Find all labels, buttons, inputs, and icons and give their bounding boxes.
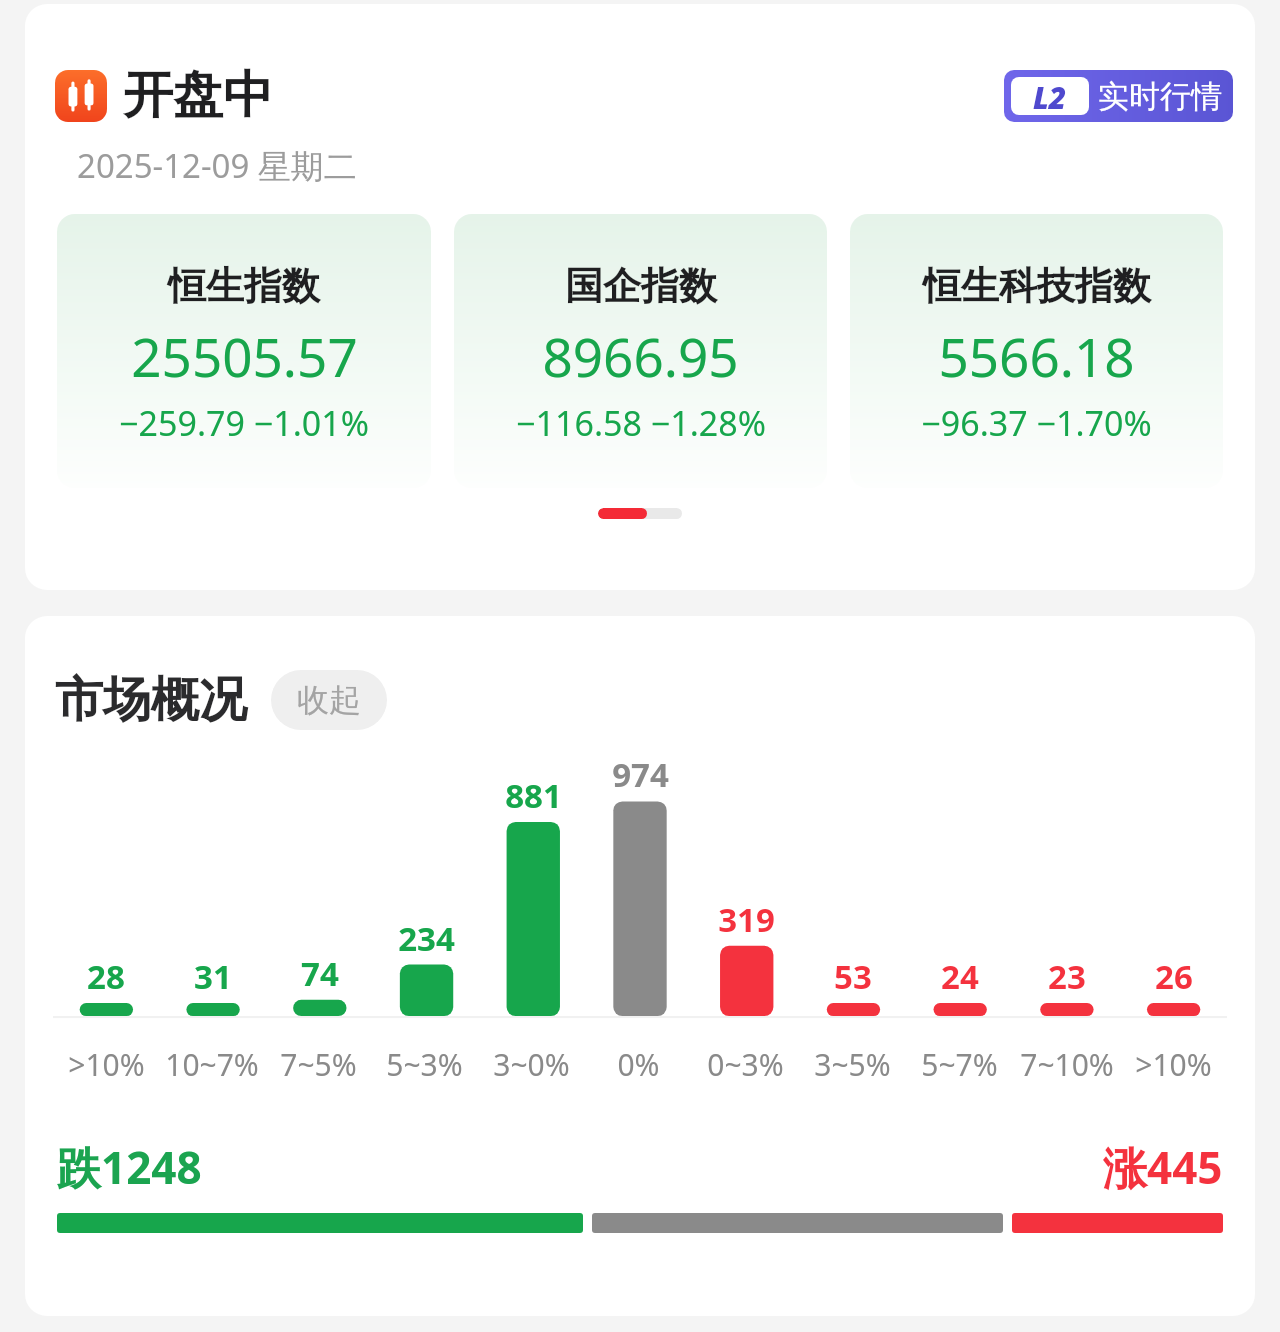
staticText: 881 bbox=[505, 773, 562, 818]
staticText: 恒生指数 bbox=[168, 262, 320, 310]
other: Market open status bbox=[55, 70, 107, 122]
staticText: 收起 bbox=[297, 680, 361, 720]
staticText: −259.79 −1.01% bbox=[119, 400, 369, 446]
staticText: L2 bbox=[1033, 77, 1067, 115]
staticText: 3~5% bbox=[814, 1044, 891, 1085]
button[interactable]: L2 bbox=[1004, 70, 1233, 122]
staticText: 5566.18 bbox=[938, 320, 1135, 392]
staticText: 7~10% bbox=[1020, 1044, 1114, 1085]
staticText: >10% bbox=[68, 1044, 145, 1085]
staticText: 74 bbox=[301, 951, 339, 996]
staticText: 25505.57 bbox=[131, 320, 358, 392]
staticText: 234 bbox=[398, 916, 455, 961]
staticText: 53 bbox=[834, 954, 872, 999]
staticText: 10~7% bbox=[165, 1044, 259, 1085]
staticText: 24 bbox=[941, 954, 979, 999]
staticText: 跌1248 bbox=[57, 1137, 202, 1197]
button[interactable]: 恒生科技指数 bbox=[850, 214, 1223, 488]
staticText: 市场概况 bbox=[55, 670, 247, 730]
staticText: 恒生科技指数 bbox=[923, 262, 1151, 310]
staticText: 涨445 bbox=[1103, 1137, 1223, 1197]
staticText: 2025-12-09 星期二 bbox=[77, 143, 357, 188]
staticText: 国企指数 bbox=[565, 262, 717, 310]
staticText: 开盘中 bbox=[123, 64, 273, 127]
staticText: 0% bbox=[617, 1044, 660, 1085]
staticText: 7~5% bbox=[280, 1044, 357, 1085]
staticText: −116.58 −1.28% bbox=[516, 400, 766, 446]
button[interactable]: 国企指数 bbox=[454, 214, 827, 488]
staticText: 319 bbox=[718, 897, 775, 942]
staticText: >10% bbox=[1135, 1044, 1212, 1085]
staticText: 8966.95 bbox=[542, 320, 739, 392]
button[interactable]: 恒生指数 bbox=[57, 214, 431, 488]
staticText: 31 bbox=[194, 954, 232, 999]
staticText: 3~0% bbox=[493, 1044, 570, 1085]
staticText: 5~3% bbox=[386, 1044, 463, 1085]
staticText: 28 bbox=[87, 954, 125, 999]
staticText: 实时行情 bbox=[1098, 77, 1222, 116]
button[interactable]: 收起 bbox=[271, 670, 387, 730]
staticText: 5~7% bbox=[921, 1044, 998, 1085]
staticText: 974 bbox=[612, 752, 669, 797]
staticText: 0~3% bbox=[707, 1044, 784, 1085]
staticText: −96.37 −1.70% bbox=[921, 400, 1152, 446]
staticText: 26 bbox=[1155, 954, 1193, 999]
staticText: 23 bbox=[1048, 954, 1086, 999]
